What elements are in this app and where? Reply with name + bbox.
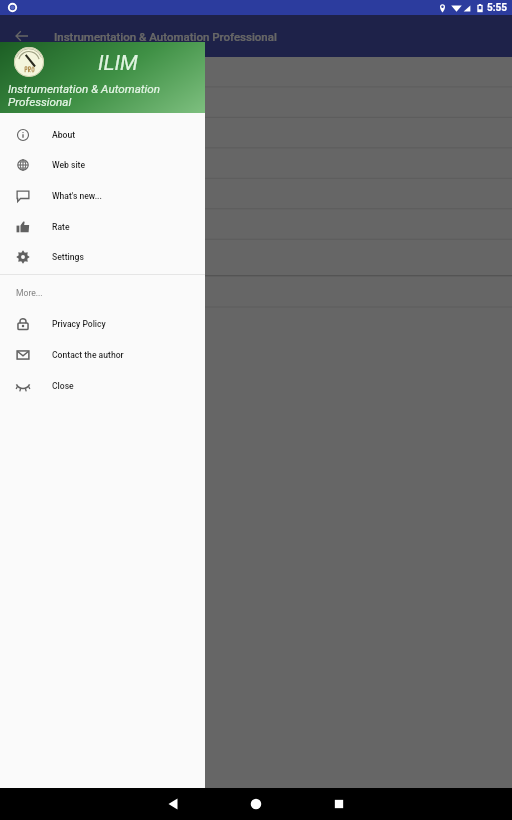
button[interactable]: Rate — [0, 212, 205, 242]
staticText: Instrumentation & Automation Professiona… — [54, 30, 277, 43]
button[interactable]: Back — [157, 788, 189, 820]
button[interactable]: Privacy Policy — [0, 309, 205, 339]
button[interactable]: Web site — [0, 150, 205, 180]
staticText: Close — [52, 381, 74, 391]
staticText: Contact the author — [52, 350, 124, 360]
button[interactable]: Back — [10, 24, 34, 48]
staticText: What's new... — [52, 191, 102, 201]
staticText: About — [52, 130, 76, 140]
staticText: Instrumentation & Automation Professiona… — [8, 82, 161, 109]
button[interactable]: About — [0, 120, 205, 150]
button[interactable]: Close — [0, 371, 205, 401]
staticText: More... — [16, 288, 43, 298]
button[interactable]: Recents — [323, 788, 355, 820]
staticText: Web site — [52, 160, 86, 170]
staticText: ILIM — [98, 51, 138, 76]
staticText: Rate — [52, 222, 70, 232]
button[interactable]: Home — [240, 788, 272, 820]
staticText: Settings — [52, 252, 84, 262]
staticText: Privacy Policy — [52, 319, 106, 329]
button[interactable]: Contact the author — [0, 340, 205, 370]
staticText: 5:55 — [487, 2, 508, 14]
button[interactable]: What's new... — [0, 181, 205, 211]
button[interactable]: Settings — [0, 242, 205, 272]
